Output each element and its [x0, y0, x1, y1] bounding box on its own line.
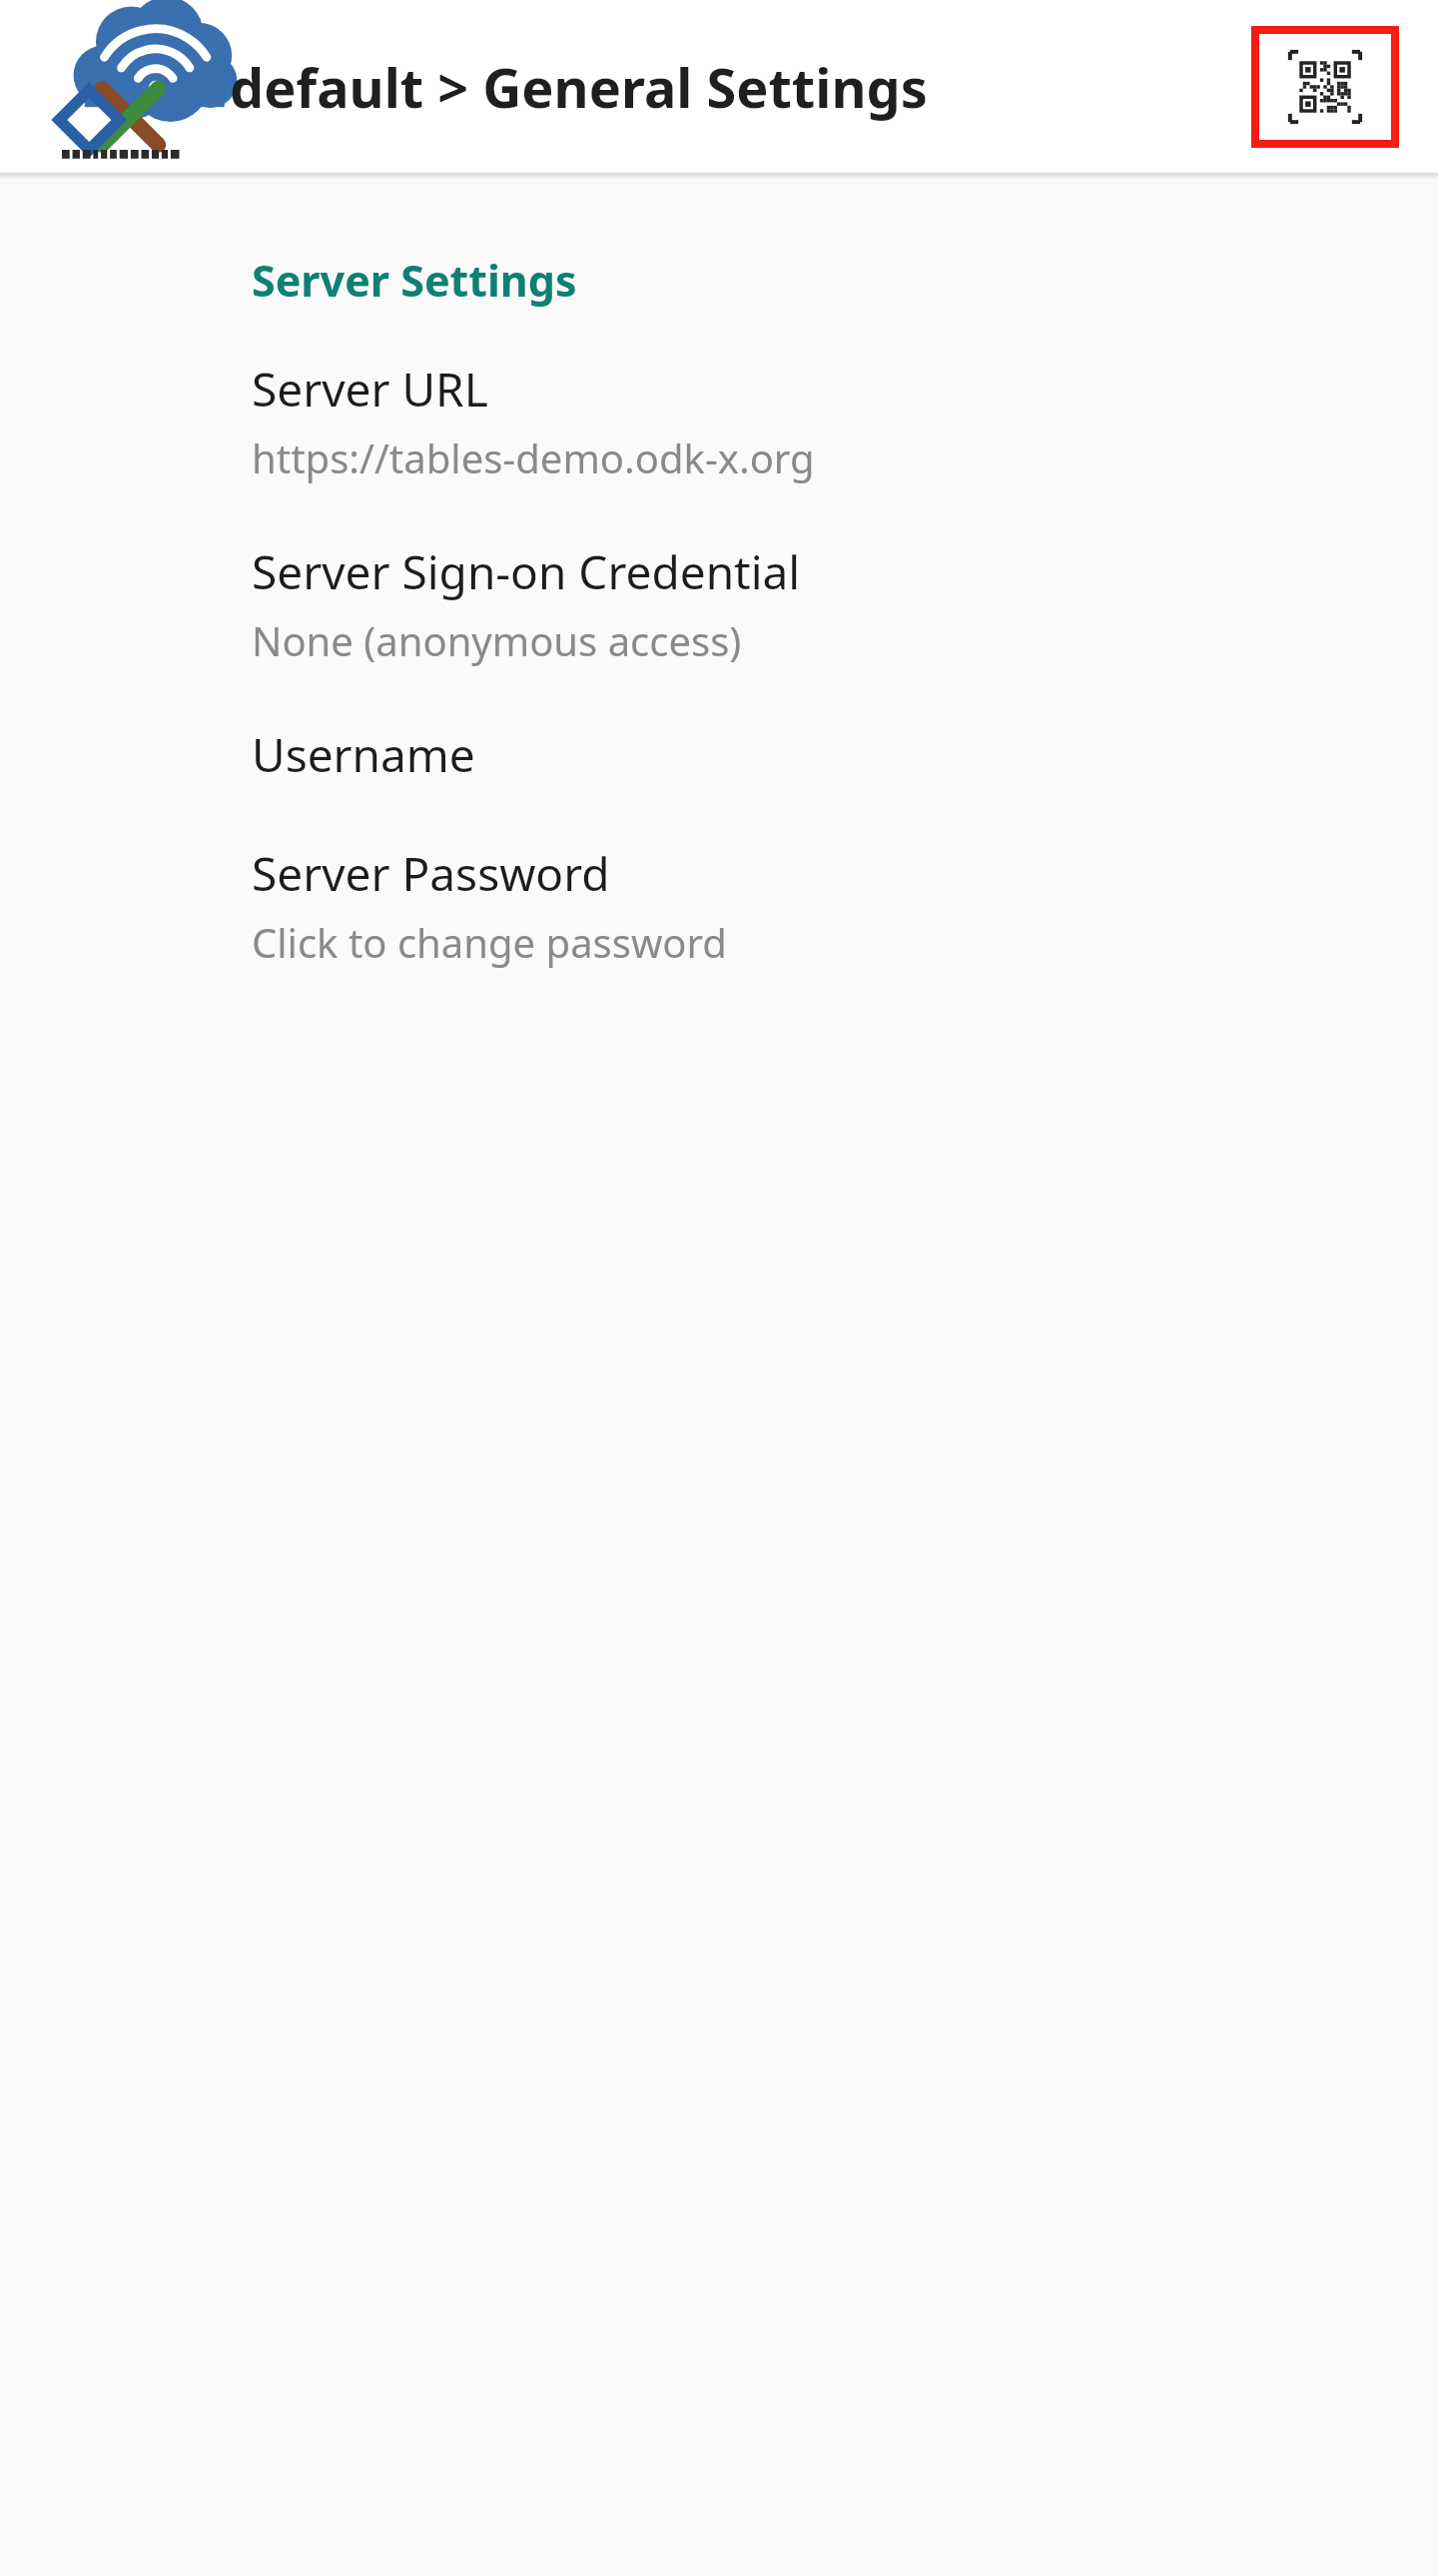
button[interactable]: Server Password — [0, 842, 1438, 969]
staticText: https://tables-demo.odk-x.org — [252, 430, 815, 484]
staticText: Server Sign-on Credential — [252, 540, 801, 603]
staticText: Server URL — [252, 358, 488, 421]
button[interactable]: Server URL — [0, 358, 1438, 484]
staticText: default > General Settings — [230, 50, 928, 124]
staticText: None (anonymous access) — [252, 613, 742, 667]
staticText: Click to change password — [252, 915, 727, 969]
staticText: Username — [252, 723, 475, 786]
button[interactable]: Server Sign-on Credential — [0, 540, 1438, 667]
staticText: Server Password — [252, 842, 610, 905]
button[interactable]: Scan QR code — [1251, 26, 1399, 148]
button[interactable]: Username — [0, 723, 1438, 786]
staticText: Server Settings — [252, 251, 577, 310]
